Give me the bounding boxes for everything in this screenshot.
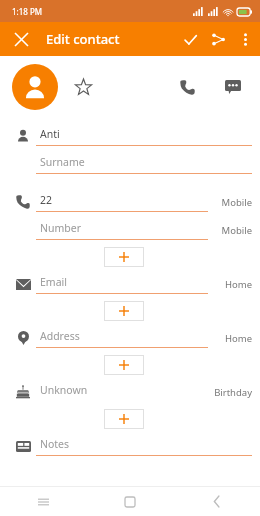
- button[interactable]: Home: [208, 278, 252, 291]
- staticText: Mobile: [221, 224, 252, 237]
- button[interactable]: Favorite: [68, 72, 98, 102]
- button[interactable]: Close: [6, 24, 36, 54]
- button[interactable]: Birthday: [208, 386, 252, 399]
- staticText: Anti: [40, 127, 60, 141]
- button[interactable]: Save: [176, 25, 204, 53]
- button[interactable]: Add field: [104, 247, 144, 267]
- staticText: Mobile: [221, 196, 252, 209]
- staticText: Number: [40, 221, 82, 235]
- staticText: Email: [40, 275, 67, 289]
- button[interactable]: Call: [172, 72, 202, 102]
- button[interactable]: Anti: [0, 122, 260, 150]
- staticText: 1:18 PM: [12, 6, 43, 17]
- button[interactable]: Add field: [104, 409, 144, 429]
- button[interactable]: Mobile: [208, 196, 252, 209]
- staticText: Edit contact: [46, 30, 120, 48]
- button[interactable]: Number: [0, 216, 260, 244]
- button[interactable]: Notes: [0, 432, 260, 460]
- button[interactable]: Address: [0, 324, 260, 352]
- button[interactable]: More options: [232, 26, 258, 52]
- button[interactable]: Add field: [104, 301, 144, 321]
- staticText: Unknown: [40, 383, 88, 397]
- button[interactable]: Email: [0, 270, 260, 298]
- button[interactable]: 22: [0, 188, 260, 216]
- button[interactable]: Back: [173, 487, 260, 516]
- button[interactable]: Change photo: [12, 64, 58, 110]
- staticText: Home: [224, 278, 252, 291]
- button[interactable]: Unknown: [0, 378, 260, 406]
- staticText: Birthday: [214, 386, 252, 399]
- button[interactable]: Home: [86, 487, 173, 516]
- button[interactable]: Recent apps: [0, 487, 86, 516]
- button[interactable]: Mobile: [208, 224, 252, 237]
- staticText: Surname: [40, 155, 85, 169]
- staticText: Home: [224, 332, 252, 345]
- button[interactable]: Home: [208, 332, 252, 345]
- button[interactable]: Surname: [0, 150, 260, 178]
- staticText: Address: [40, 329, 80, 343]
- button[interactable]: Share: [204, 25, 232, 53]
- staticText: 22: [40, 193, 53, 207]
- button[interactable]: Send message: [218, 72, 248, 102]
- staticText: Notes: [40, 437, 70, 451]
- button[interactable]: Add field: [104, 355, 144, 375]
